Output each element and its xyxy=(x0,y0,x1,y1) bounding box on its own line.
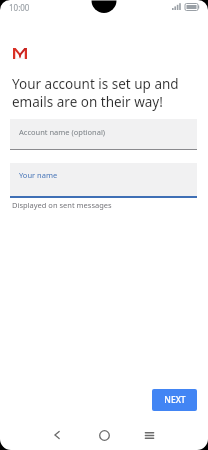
button[interactable]: Home xyxy=(89,420,119,450)
button[interactable]: Your name xyxy=(10,163,197,198)
button[interactable]: Account name (optional) xyxy=(10,119,197,150)
button[interactable]: Recent apps xyxy=(134,420,164,450)
button[interactable]: NEXT xyxy=(152,389,197,411)
staticText: Your account is set up and emails are on… xyxy=(12,75,198,111)
staticText: Account name (optional) xyxy=(19,127,106,137)
staticText: NEXT xyxy=(164,394,186,406)
staticText: 10:00 xyxy=(9,2,30,13)
staticText: Your name xyxy=(19,170,58,180)
button[interactable]: Back xyxy=(42,420,72,450)
staticText: Displayed on sent messages xyxy=(12,200,112,210)
